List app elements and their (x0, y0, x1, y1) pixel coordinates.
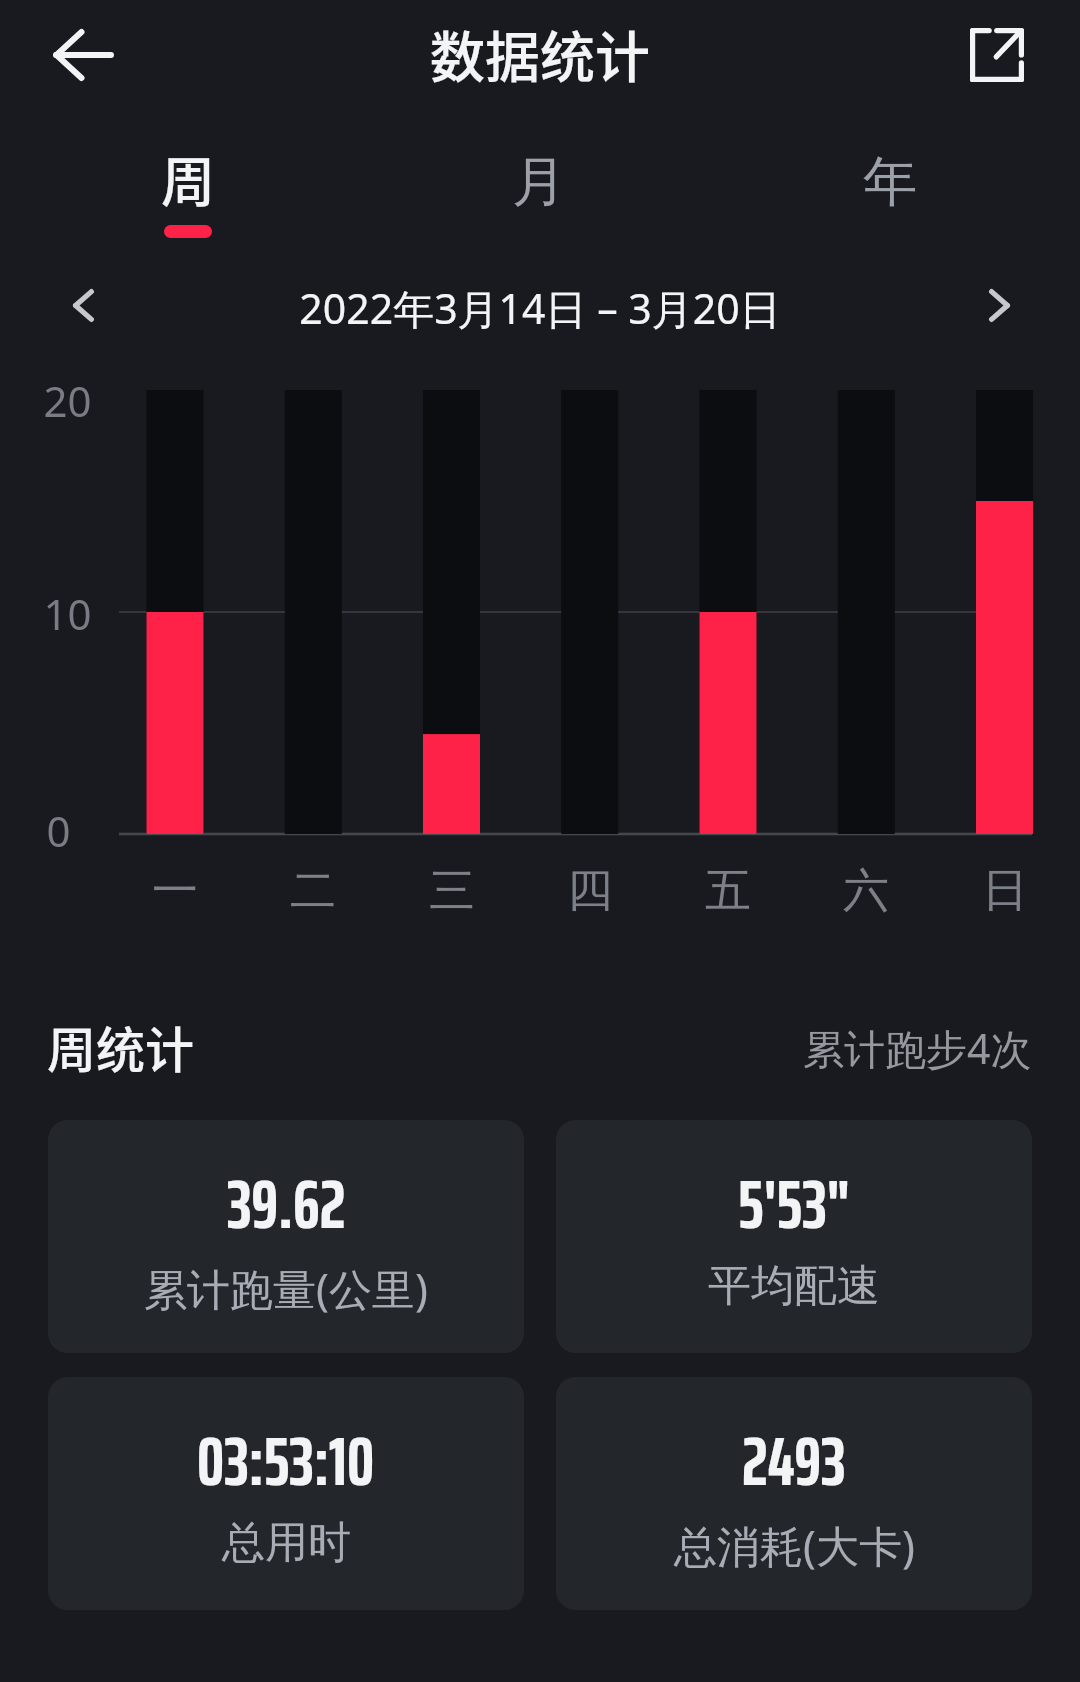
staticText: 数据统计 (0, 13, 1080, 93)
staticText: 四 (567, 862, 613, 920)
staticText: 一 (152, 862, 198, 920)
button[interactable]: 周 (98, 130, 278, 260)
staticText: 平均配速 (708, 1259, 880, 1313)
button[interactable]: 年 (800, 130, 980, 260)
button[interactable]: 2493 (556, 1377, 1032, 1610)
button[interactable]: 月 (449, 130, 629, 260)
staticText: 日 (982, 862, 1028, 920)
staticText: 二 (290, 862, 336, 920)
staticText: 三 (429, 862, 475, 920)
staticText: 20 (43, 372, 92, 429)
staticText: 2022年3月14日 – 3月20日 (0, 280, 1080, 336)
staticText: 2493 (742, 1408, 846, 1515)
staticText: 5'53" (738, 1151, 850, 1258)
staticText: 总用时 (222, 1516, 351, 1570)
button[interactable]: Next week (967, 273, 1031, 337)
staticText: 0 (46, 802, 71, 859)
staticText: 累计跑量(公里) (144, 1259, 428, 1318)
staticText: 六 (843, 862, 889, 920)
staticText: 月 (512, 148, 566, 216)
button[interactable]: Previous week (51, 273, 115, 337)
staticText: 周统计 (47, 1011, 195, 1082)
staticText: 03:53:10 (197, 1408, 375, 1515)
staticText: 累计跑步4次 (803, 1020, 1032, 1076)
staticText: 10 (43, 585, 92, 642)
staticText: 周 (161, 139, 215, 217)
button[interactable]: 39.62 (48, 1120, 524, 1353)
staticText: 年 (863, 148, 917, 216)
button[interactable]: Back (42, 14, 124, 96)
button[interactable]: 03:53:10 (48, 1377, 524, 1610)
button[interactable]: 5'53" (556, 1120, 1032, 1353)
staticText: 39.62 (227, 1151, 346, 1258)
staticText: 五 (705, 862, 751, 920)
button[interactable]: Share (956, 14, 1038, 96)
staticText: 总消耗(大卡) (674, 1516, 915, 1575)
